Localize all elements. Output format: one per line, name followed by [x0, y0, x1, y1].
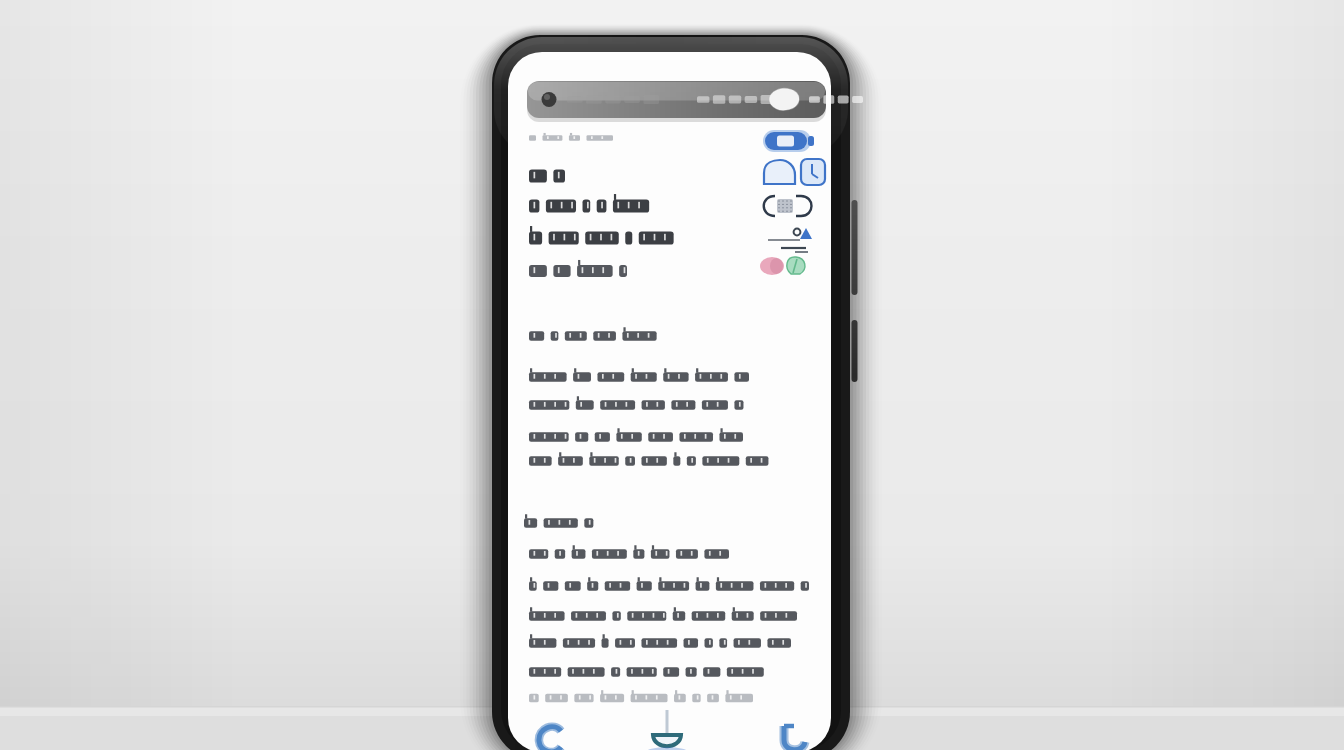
button[interactable]: Signature: [758, 226, 830, 258]
button[interactable]: Article section two: [510, 505, 830, 705]
button[interactable]: Battery status: [758, 126, 830, 156]
button[interactable]: Brew: [616, 714, 724, 750]
button[interactable]: Article section one: [520, 320, 820, 480]
button[interactable]: Media capsule: [758, 192, 830, 222]
button[interactable]: Call: [740, 714, 831, 750]
button[interactable]: Timer: [758, 155, 830, 189]
button[interactable]: Headline: [520, 160, 820, 285]
button[interactable]: Refresh: [508, 714, 616, 750]
button[interactable]: Tags: [755, 252, 827, 282]
